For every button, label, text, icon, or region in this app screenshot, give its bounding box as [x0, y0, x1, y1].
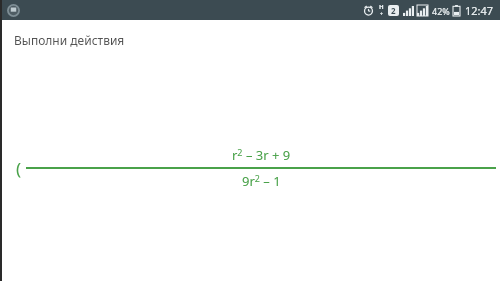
- staticText: H: [379, 3, 384, 11]
- staticText: (: [16, 157, 22, 180]
- staticText: r2 – 3r + 9: [232, 146, 291, 164]
- staticText: 12:47: [465, 3, 494, 18]
- staticText: +: [380, 11, 383, 18]
- staticText: 2: [391, 5, 396, 16]
- staticText: Выполни действия: [14, 32, 125, 48]
- staticText: 9r2 – 1: [242, 172, 281, 190]
- staticText: 42%: [432, 5, 450, 17]
